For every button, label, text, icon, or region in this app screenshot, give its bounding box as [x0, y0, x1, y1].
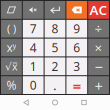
- button[interactable]: 4: [23, 39, 44, 56]
- button[interactable]: 7: [23, 20, 44, 38]
- button[interactable]: ÷: [88, 20, 109, 38]
- button[interactable]: 3: [66, 57, 87, 75]
- staticText: +: [95, 76, 103, 94]
- button[interactable]: Back: [19, 95, 33, 109]
- button[interactable]: 8: [45, 20, 65, 38]
- button[interactable]: Home: [48, 95, 62, 109]
- button[interactable]: =: [66, 76, 87, 94]
- staticText: 6: [73, 39, 80, 55]
- staticText: √x̅: [5, 59, 18, 73]
- staticText: 8: [51, 21, 58, 37]
- button[interactable]: 2: [45, 57, 65, 75]
- button[interactable]: −: [88, 57, 109, 75]
- button[interactable]: ( ): [1, 20, 22, 38]
- button[interactable]: ×: [88, 39, 109, 56]
- button[interactable]: Delete: [66, 1, 87, 19]
- button[interactable]: 9: [66, 20, 87, 38]
- button[interactable]: xʸ: [1, 39, 22, 56]
- button[interactable]: Shape: [1, 1, 22, 19]
- staticText: −: [95, 57, 103, 75]
- staticText: ÷: [95, 20, 103, 37]
- button[interactable]: 6: [66, 39, 87, 56]
- staticText: 1: [30, 58, 37, 74]
- staticText: ( ): [7, 22, 16, 36]
- button[interactable]: 5: [45, 39, 65, 56]
- staticText: 7: [30, 21, 37, 37]
- staticText: ×: [95, 39, 103, 56]
- staticText: %: [6, 77, 16, 93]
- staticText: 2: [51, 58, 58, 74]
- staticText: AC: [90, 1, 108, 19]
- button[interactable]: 1: [23, 57, 44, 75]
- button[interactable]: AC: [88, 1, 109, 19]
- button[interactable]: %: [1, 76, 22, 94]
- staticText: 5: [51, 39, 58, 55]
- staticText: xʸ: [6, 39, 16, 55]
- button[interactable]: .: [45, 76, 65, 94]
- button[interactable]: Recent apps: [77, 95, 91, 109]
- staticText: 4: [30, 39, 37, 55]
- staticText: .: [53, 76, 57, 94]
- button[interactable]: 0: [23, 76, 44, 94]
- button[interactable]: √x̅: [1, 57, 22, 75]
- button[interactable]: +: [88, 76, 109, 94]
- button[interactable]: Mute: [23, 1, 44, 19]
- staticText: =: [73, 76, 81, 94]
- staticText: 3: [73, 58, 80, 74]
- button[interactable]: Enter: [45, 1, 65, 19]
- staticText: 0: [30, 77, 37, 93]
- staticText: 9: [73, 21, 80, 37]
